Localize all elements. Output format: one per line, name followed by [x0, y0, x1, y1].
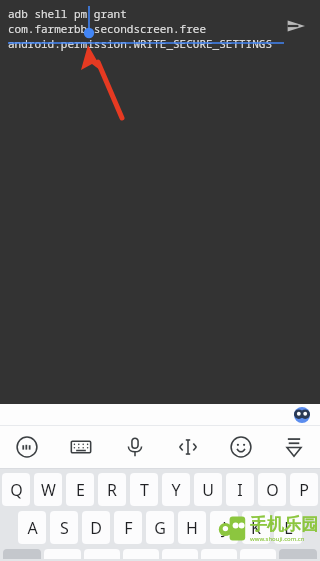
button[interactable]: U	[194, 473, 222, 506]
button[interactable]: W	[34, 473, 62, 506]
button[interactable]: F	[114, 511, 142, 544]
button[interactable]: Backspace	[279, 549, 317, 559]
staticText: Q	[10, 479, 23, 501]
button[interactable]: G	[146, 511, 174, 544]
button[interactable]: O	[258, 473, 286, 506]
staticText: Y	[171, 479, 181, 501]
staticText: W	[41, 479, 56, 501]
button[interactable]: Account	[294, 407, 310, 423]
staticText: E	[76, 479, 85, 501]
staticText: P	[299, 479, 309, 501]
staticText: K	[251, 517, 261, 539]
button[interactable]: Voice input	[108, 426, 161, 468]
button[interactable]: Send	[282, 12, 310, 40]
button[interactable]: S	[50, 511, 78, 544]
button[interactable]: Text cursor	[161, 426, 214, 468]
button[interactable]: I	[226, 473, 254, 506]
staticText: com.farmerbb.secondscreen.free	[8, 21, 206, 36]
button[interactable]: J	[210, 511, 238, 544]
button[interactable]: More	[267, 426, 320, 468]
button[interactable]: H	[178, 511, 206, 544]
button[interactable]: Emoji	[214, 426, 267, 468]
staticText: F	[124, 517, 133, 539]
staticText: A	[27, 517, 38, 539]
staticText: T	[140, 479, 149, 501]
staticText: S	[60, 517, 69, 539]
staticText: www.shouji.com.cn	[250, 535, 305, 543]
button[interactable]: T	[130, 473, 158, 506]
staticText: I	[237, 479, 243, 501]
staticText: U	[202, 479, 214, 501]
button[interactable]: Y	[162, 473, 190, 506]
staticText: L	[284, 517, 293, 539]
button[interactable]: Shift	[3, 549, 41, 559]
button[interactable]: D	[82, 511, 110, 544]
button[interactable]: E	[66, 473, 94, 506]
staticText: android.permission.WRITE_SECURE_SETTINGS	[8, 36, 272, 51]
button[interactable]: Input method	[0, 426, 54, 468]
button[interactable]: K	[242, 511, 270, 544]
button[interactable]: Q	[2, 473, 30, 506]
staticText: D	[90, 517, 102, 539]
staticText: adb shell pm grant	[8, 6, 127, 21]
button[interactable]: L	[274, 511, 302, 544]
staticText: O	[266, 479, 279, 501]
staticText: R	[107, 479, 117, 501]
staticText: G	[154, 517, 166, 539]
staticText: H	[186, 517, 198, 539]
button[interactable]: R	[98, 473, 126, 506]
staticText: 手机乐园	[250, 514, 318, 535]
staticText: J	[222, 517, 227, 539]
button[interactable]: A	[18, 511, 46, 544]
button[interactable]: P	[290, 473, 318, 506]
button[interactable]: Keyboard	[54, 426, 108, 468]
